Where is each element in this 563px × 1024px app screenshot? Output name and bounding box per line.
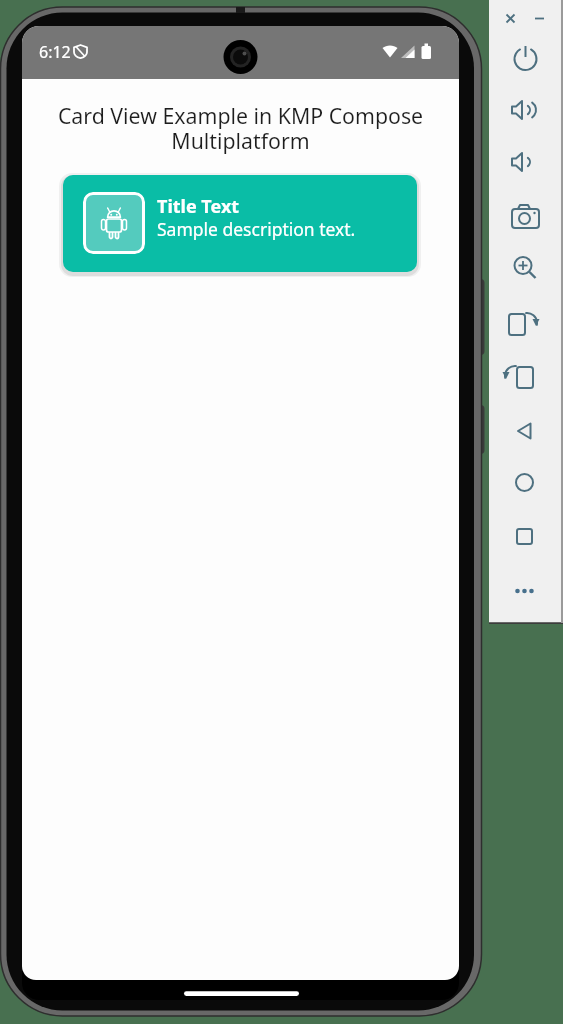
- button[interactable]: [508, 518, 544, 554]
- button[interactable]: [508, 144, 544, 180]
- button[interactable]: [508, 41, 544, 77]
- button[interactable]: [508, 92, 544, 128]
- button[interactable]: Title Text: [63, 175, 417, 272]
- staticText: Sample description text.: [157, 217, 356, 241]
- button[interactable]: [508, 306, 544, 342]
- button[interactable]: [508, 464, 544, 500]
- button[interactable]: [508, 573, 544, 609]
- button[interactable]: [508, 359, 544, 395]
- button[interactable]: [508, 198, 544, 234]
- button[interactable]: [508, 248, 544, 284]
- staticText: Card View Example in KMP Compose Multipl…: [22, 101, 459, 156]
- staticText: 6:12: [39, 41, 71, 63]
- staticText: Title Text: [157, 194, 240, 219]
- button[interactable]: [508, 413, 544, 449]
